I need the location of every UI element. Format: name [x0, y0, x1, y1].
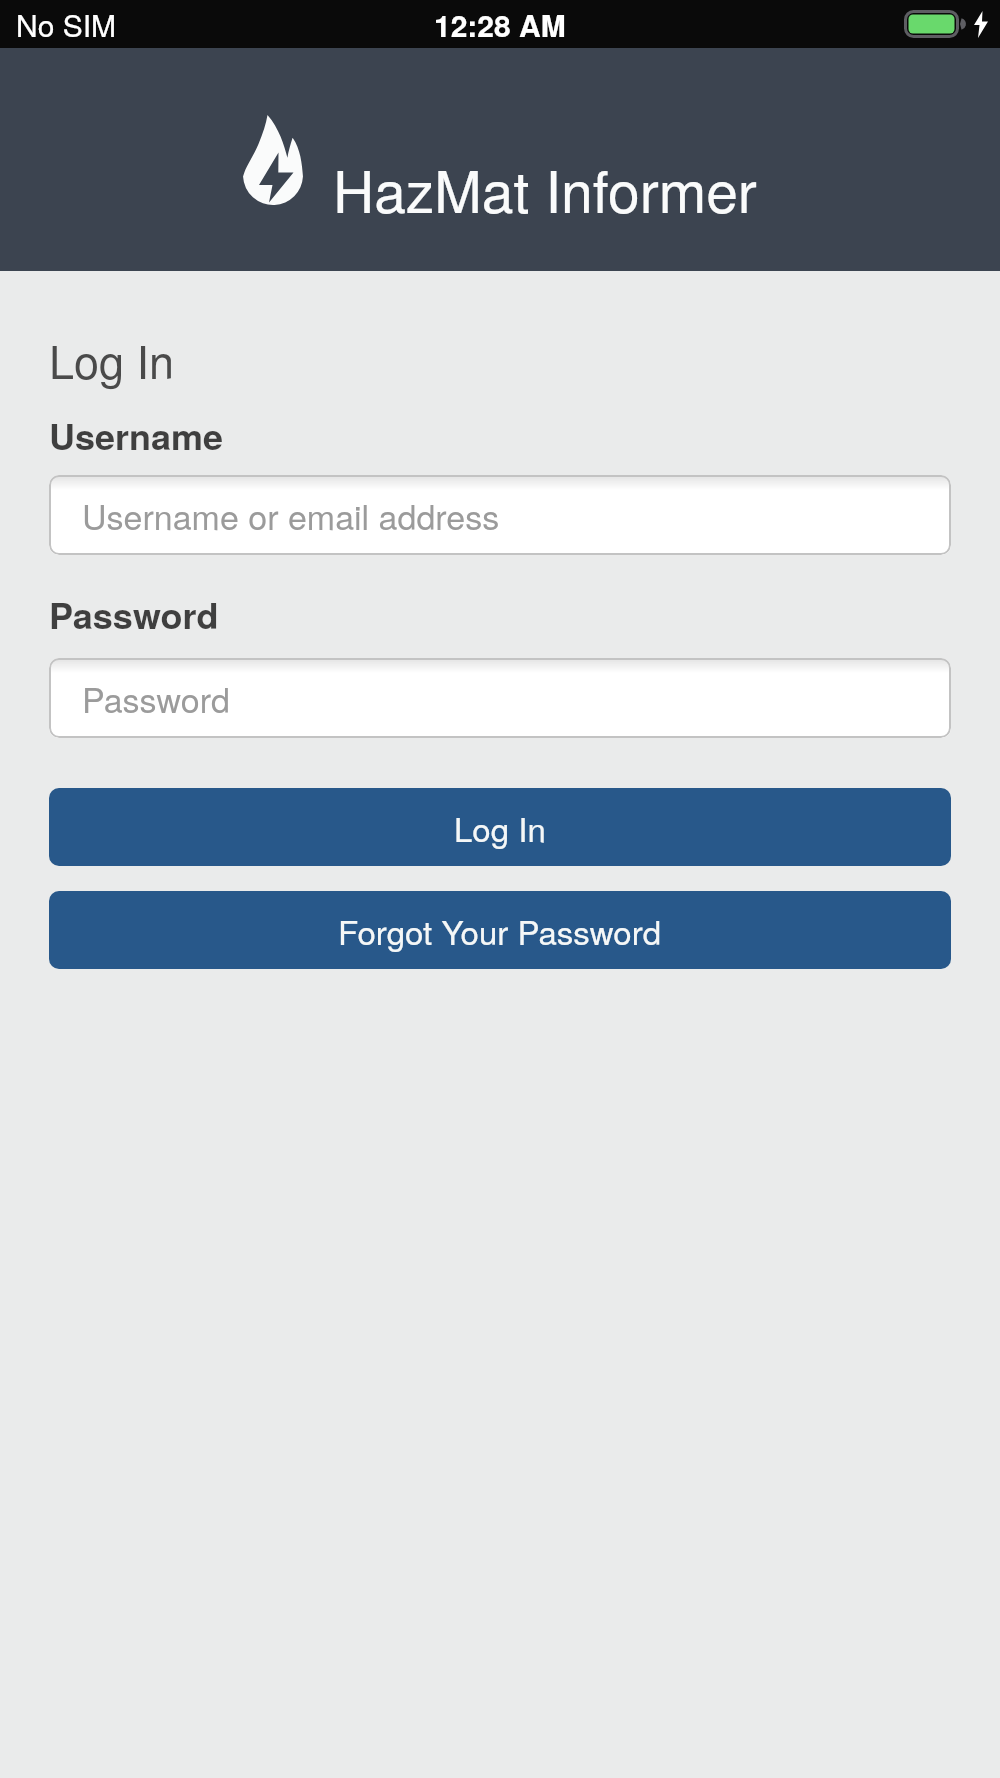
button[interactable]: Password	[49, 658, 951, 738]
staticText: Username or email address	[82, 491, 500, 540]
button[interactable]: Forgot Your Password	[49, 891, 951, 969]
staticText: 12:28 AM	[434, 3, 566, 46]
staticText: No SIM	[16, 3, 117, 46]
staticText: Log In	[454, 804, 546, 851]
button[interactable]: Log In	[49, 788, 951, 866]
staticText: Username	[49, 409, 224, 461]
staticText: HazMat Informer	[333, 148, 757, 230]
staticText: Forgot Your Password	[338, 907, 662, 954]
staticText: Log In	[49, 327, 175, 391]
staticText: Password	[49, 588, 219, 640]
button[interactable]: Username or email address	[49, 475, 951, 555]
staticText: Password	[82, 674, 230, 723]
